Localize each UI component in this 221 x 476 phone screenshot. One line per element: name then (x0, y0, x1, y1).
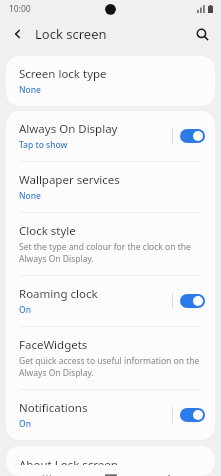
staticText: Clock style (19, 223, 76, 239)
staticText: Wallpaper services (19, 172, 120, 188)
button[interactable]: Wallpaper services (6, 162, 215, 212)
staticText: None (19, 190, 41, 202)
button[interactable]: FaceWidgets (6, 327, 215, 389)
button[interactable]: Toggle on (180, 408, 205, 422)
staticText: On (19, 304, 31, 316)
button[interactable]: Toggle on (180, 129, 205, 143)
button[interactable]: Notifications (6, 390, 215, 440)
button[interactable]: Always On Display (6, 111, 215, 161)
staticText: 10:00 (9, 3, 31, 15)
staticText: FaceWidgets (19, 337, 88, 353)
staticText: Get quick access to useful information o… (19, 355, 202, 379)
staticText: Lock screen (35, 25, 107, 43)
button[interactable]: Roaming clock (6, 276, 215, 326)
staticText: None (19, 84, 41, 96)
staticText: About Lock screen (19, 457, 118, 465)
button[interactable]: Screen lock type (6, 56, 215, 106)
staticText: Set the type and colour for the clock on… (19, 241, 202, 265)
button[interactable]: Search (191, 23, 213, 45)
staticText: Screen lock type (19, 66, 107, 82)
button[interactable]: Toggle on (180, 294, 205, 308)
staticText: Notifications (19, 400, 88, 416)
button[interactable]: Clock style (6, 213, 215, 275)
staticText: Always On Display (19, 121, 118, 137)
staticText: Roaming clock (19, 286, 98, 302)
staticText: On (19, 418, 31, 430)
staticText: Tap to show (19, 139, 68, 151)
button[interactable]: About Lock screen (6, 446, 215, 476)
button[interactable]: Back (8, 24, 28, 44)
